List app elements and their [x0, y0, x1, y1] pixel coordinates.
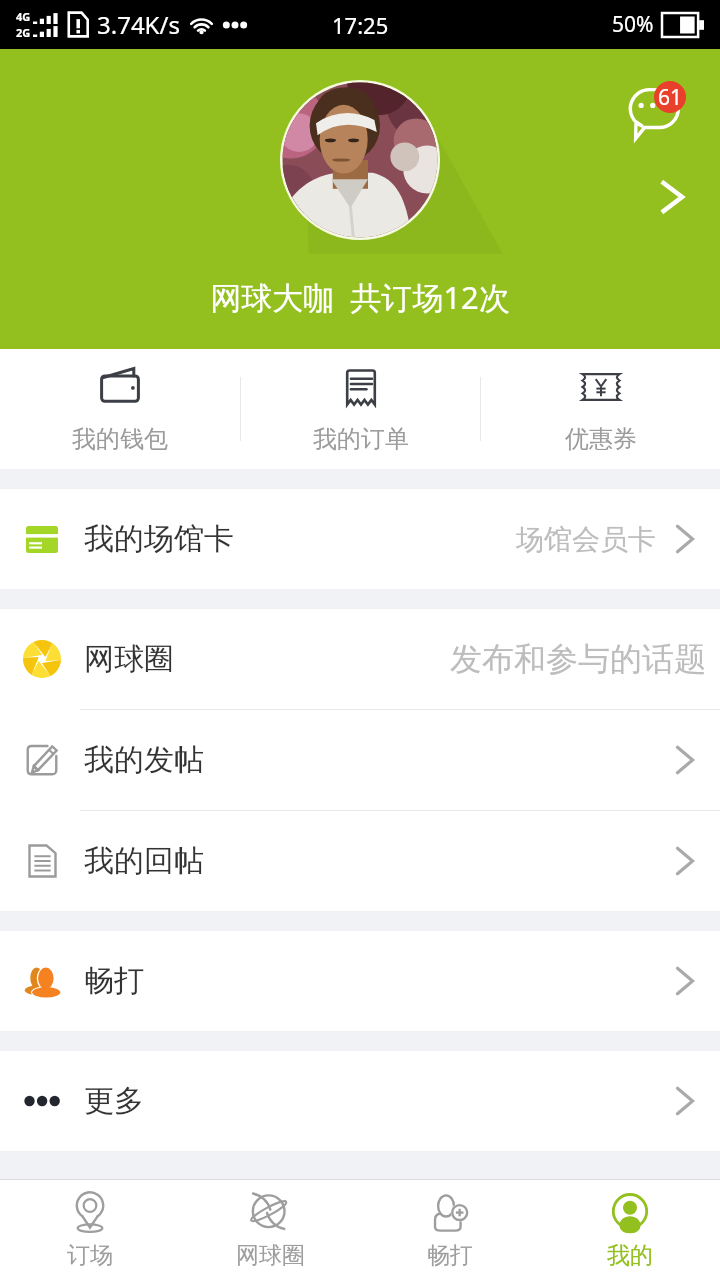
staticText: 3.74K/s: [97, 8, 180, 41]
staticText: 17:25: [332, 10, 389, 40]
button[interactable]: 更多: [0, 1051, 720, 1151]
button[interactable]: 我的场馆卡: [0, 489, 720, 589]
staticText: 我的: [607, 1241, 653, 1270]
button[interactable]: Profile detail: [644, 169, 700, 225]
staticText: 订场: [67, 1241, 113, 1270]
staticText: 我的订单: [313, 424, 409, 454]
button[interactable]: 网球圈: [0, 609, 720, 709]
staticText: 我的发帖: [84, 741, 204, 779]
staticText: 我的场馆卡: [84, 520, 234, 558]
staticText: 畅打: [427, 1241, 473, 1270]
staticText: 发布和参与的话题: [450, 639, 706, 679]
staticText: 我的钱包: [72, 424, 168, 454]
staticText: 2G: [16, 25, 31, 40]
staticText: 50%: [612, 10, 654, 39]
button[interactable]: 我的钱包: [0, 354, 240, 464]
staticText: 更多: [84, 1082, 144, 1120]
button[interactable]: 我的: [540, 1183, 720, 1278]
button[interactable]: 我的订单: [241, 354, 480, 464]
button[interactable]: Messages: [621, 82, 693, 146]
staticText: 网球圈: [236, 1241, 305, 1270]
button[interactable]: 我的回帖: [0, 811, 720, 911]
staticText: 场馆会员卡: [516, 522, 656, 557]
button[interactable]: 畅打: [0, 931, 720, 1031]
button[interactable]: 优惠券: [481, 354, 720, 464]
staticText: 我的回帖: [84, 842, 204, 880]
button[interactable]: 网球圈: [180, 1183, 360, 1278]
staticText: 4G: [16, 9, 31, 24]
staticText: 优惠券: [565, 424, 637, 454]
button[interactable]: 畅打: [360, 1183, 540, 1278]
staticText: 网球大咖 共订场12次: [210, 276, 510, 318]
button[interactable]: 我的发帖: [0, 710, 720, 810]
staticText: 网球圈: [84, 640, 174, 678]
button[interactable]: 订场: [0, 1183, 180, 1278]
staticText: 畅打: [84, 962, 144, 1000]
staticText: 61: [658, 83, 683, 112]
